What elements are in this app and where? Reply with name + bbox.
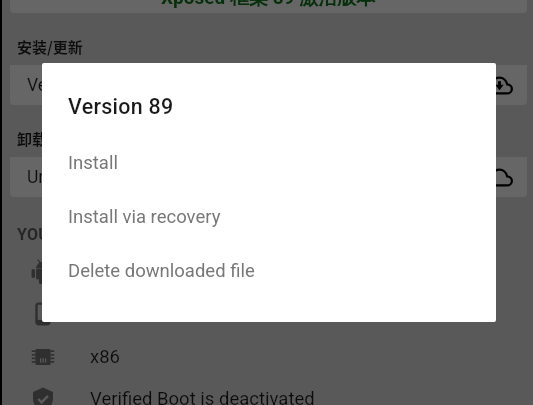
staticText: x86 [90,346,120,368]
staticText: 卸载 [17,128,48,150]
staticText: Install [68,152,118,174]
button[interactable]: Install [42,136,496,190]
staticText: Verified Boot is deactivated [90,388,315,405]
staticText: Pixel 2 [90,303,145,325]
staticText: Uninstall [27,167,95,188]
button[interactable]: x86 [0,336,533,378]
button[interactable]: Uninstall [10,157,527,197]
staticText: Android 9 (Pie) [90,261,213,283]
button[interactable]: Version 89 [10,65,527,105]
button[interactable]: Delete downloaded file [42,244,496,298]
button[interactable]: Verified Boot is deactivated [0,378,533,405]
staticText: 安装/更新 [17,36,83,58]
button[interactable]: Android 9 (Pie) [0,251,533,293]
staticText: Version 89 [68,94,174,119]
staticText: Install via recovery [68,206,221,228]
button[interactable]: Install via recovery [42,190,496,244]
staticText: YOUR DEVICE [17,225,120,244]
staticText: Xposed 框架 89 激活版本 [161,0,376,10]
button[interactable]: Pixel 2 [0,293,533,335]
staticText: Version 89 [27,75,110,96]
staticText: Delete downloaded file [68,260,255,282]
